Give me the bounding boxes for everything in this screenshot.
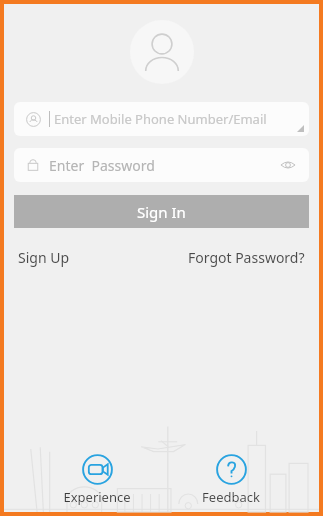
staticText: Experience: [63, 488, 131, 506]
button[interactable]: [130, 20, 194, 84]
button[interactable]: Feedback: [196, 452, 266, 508]
button[interactable]: Enter Password: [14, 148, 309, 182]
staticText: Forgot Password?: [188, 248, 305, 267]
button[interactable]: Sign In: [14, 195, 309, 228]
staticText: Feedback: [202, 488, 260, 506]
staticText: Sign In: [137, 202, 186, 222]
staticText: Enter Mobile Phone Number/Email: [54, 110, 267, 128]
button[interactable]: Forgot Password?: [188, 248, 305, 267]
button[interactable]: Sign Up: [18, 248, 70, 267]
button[interactable]: Show password: [279, 156, 297, 174]
button[interactable]: Experience: [57, 452, 137, 508]
staticText: Sign Up: [18, 248, 70, 267]
staticText: Enter Password: [49, 156, 155, 175]
button[interactable]: Enter Mobile Phone Number/Email: [14, 102, 309, 136]
